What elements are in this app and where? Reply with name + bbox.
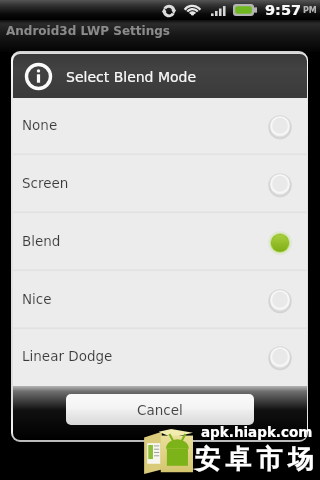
staticText: Cancel	[137, 402, 183, 418]
staticText: Android3d LWP Settings	[6, 24, 170, 38]
staticText: 安卓市场	[192, 443, 316, 476]
staticText: Screen	[22, 175, 267, 191]
staticText: apk.hiapk.com	[201, 424, 313, 440]
button[interactable]: Blend	[13, 214, 307, 272]
staticText: Nice	[22, 291, 267, 307]
staticText: None	[22, 117, 267, 133]
button[interactable]: Cancel	[66, 394, 254, 425]
button[interactable]: Linear Dodge	[13, 330, 307, 386]
staticText: 9:57	[265, 2, 302, 19]
staticText: Select Blend Mode	[66, 69, 197, 85]
button[interactable]: Screen	[13, 156, 307, 214]
button[interactable]: Nice	[13, 272, 307, 330]
button[interactable]: None	[13, 98, 307, 156]
staticText: Blend	[22, 233, 267, 249]
staticText: PM	[303, 6, 317, 15]
staticText: Linear Dodge	[22, 348, 267, 364]
